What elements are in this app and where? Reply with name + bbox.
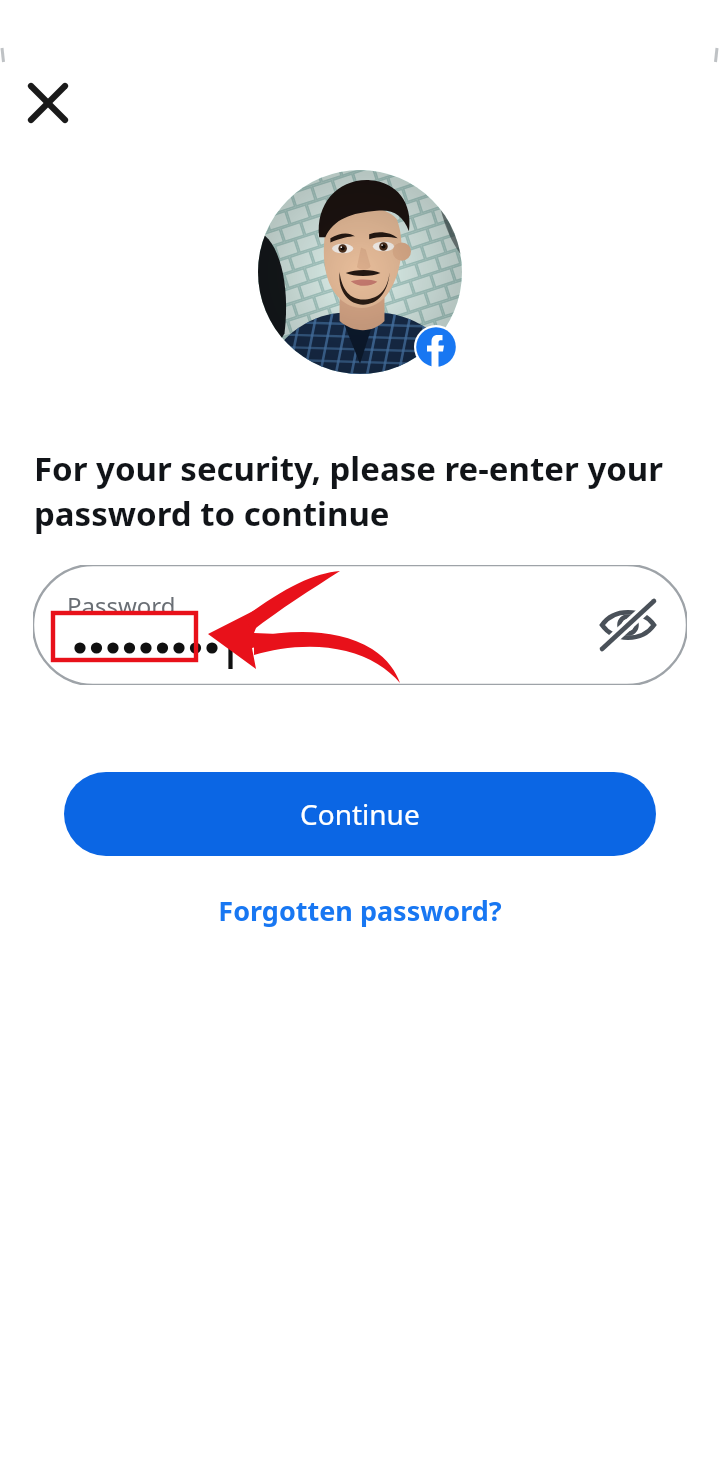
button[interactable]: Forgotten password? (0, 880, 720, 940)
staticText: For your security, please re-enter your … (34, 446, 674, 536)
staticText: Continue (300, 795, 420, 833)
button[interactable]: Continue (64, 772, 656, 856)
button[interactable]: Password (33, 565, 687, 685)
button[interactable]: Close (14, 69, 82, 137)
button[interactable]: Show password (599, 596, 657, 654)
staticText: Forgotten password? (218, 892, 502, 929)
staticText: Password (67, 589, 176, 622)
